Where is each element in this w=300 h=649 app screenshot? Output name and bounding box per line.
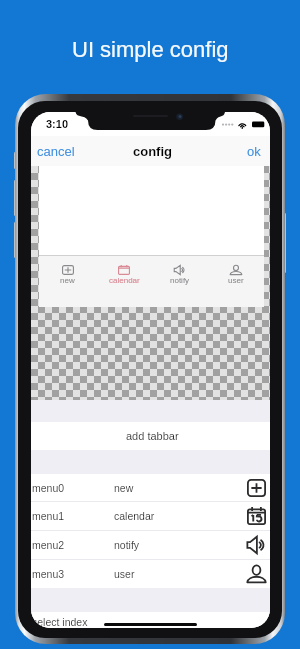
button[interactable]: ok [238, 137, 270, 166]
button[interactable]: cancel [31, 137, 81, 166]
staticText: menu1 [32, 510, 115, 522]
staticText: user [114, 568, 135, 580]
staticText: calendar [109, 276, 140, 285]
other: Calendar [247, 507, 266, 525]
button[interactable]: menu0 [31, 474, 270, 501]
staticText: 3:10 [46, 118, 69, 130]
staticText: notify [170, 276, 190, 285]
staticText: calendar [114, 510, 155, 522]
staticText: new [114, 482, 134, 494]
staticText: menu0 [32, 482, 115, 494]
other: Notify [247, 536, 266, 554]
staticText: notify [114, 539, 140, 551]
button[interactable]: add tabbar [31, 422, 270, 450]
staticText: menu3 [32, 568, 115, 580]
button[interactable]: menu3 [31, 560, 270, 588]
button[interactable]: notify [152, 256, 208, 307]
staticText: menu2 [32, 539, 115, 551]
staticText: add tabbar [126, 430, 179, 442]
staticText: UI simple config [72, 37, 229, 62]
staticText: user [228, 276, 244, 285]
staticText: cancel [37, 144, 75, 159]
button[interactable]: new [39, 256, 96, 307]
other: Add [247, 479, 266, 497]
staticText: new [60, 276, 75, 285]
button[interactable]: user [208, 256, 264, 307]
staticText: config [133, 144, 172, 159]
button[interactable]: calendar [96, 256, 152, 307]
other: User [247, 565, 266, 583]
staticText: ok [247, 144, 261, 159]
button[interactable]: menu1 [31, 502, 270, 530]
button[interactable]: menu2 [31, 531, 270, 559]
staticText: select index [32, 616, 88, 628]
